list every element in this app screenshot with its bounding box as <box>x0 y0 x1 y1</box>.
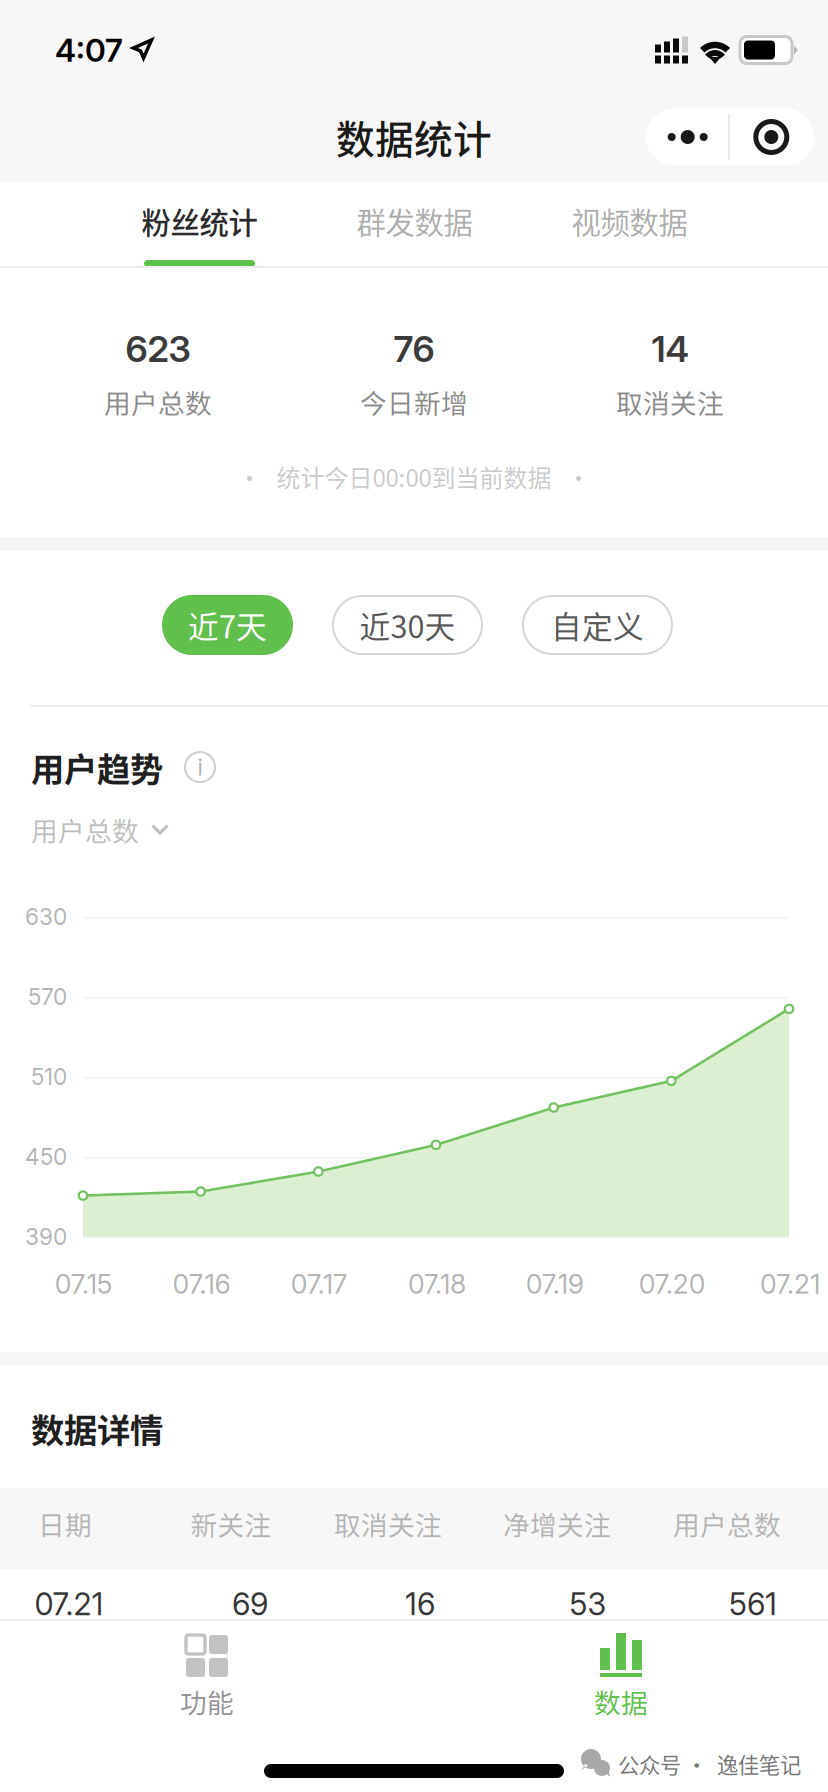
staticText: 数据 <box>594 1682 648 1721</box>
button[interactable]: 近7天 <box>163 596 292 654</box>
staticText: 近30天 <box>359 603 455 647</box>
staticText: 取消关注 <box>334 1504 442 1543</box>
staticText: 510 <box>31 1063 67 1091</box>
button[interactable]: 更多 <box>646 108 814 165</box>
staticText: 功能 <box>180 1682 234 1721</box>
staticText: · 统计今日00:00到当前数据 · <box>237 459 590 494</box>
staticText: 自定义 <box>551 603 644 647</box>
staticText: 14 <box>651 327 688 371</box>
button[interactable]: 功能 <box>0 1621 414 1736</box>
staticText: 07.21 <box>34 1585 103 1622</box>
staticText: 07.20 <box>639 1268 706 1300</box>
staticText: 取消关注 <box>616 383 724 421</box>
staticText: 新关注 <box>190 1504 271 1543</box>
staticText: 570 <box>28 983 67 1011</box>
button[interactable]: 数据 <box>414 1621 828 1736</box>
staticText: 450 <box>25 1143 67 1171</box>
button[interactable]: 粉丝统计 <box>92 182 307 266</box>
staticText: 07.15 <box>55 1268 113 1300</box>
button[interactable]: 自定义 <box>523 596 672 654</box>
staticText: 16 <box>405 1585 435 1622</box>
staticText: 4:07 <box>55 31 123 69</box>
staticText: 净增关注 <box>503 1504 611 1543</box>
staticText: 日期 <box>38 1504 92 1543</box>
staticText: 公众号 · 逸佳笔记 <box>618 1749 801 1779</box>
staticText: 近7天 <box>188 603 267 647</box>
staticText: 用户总数 <box>673 1504 781 1543</box>
staticText: 630 <box>25 903 67 931</box>
staticText: 07.16 <box>172 1268 230 1300</box>
staticText: 群发数据 <box>356 200 472 242</box>
staticText: 数据统计 <box>336 109 492 165</box>
staticText: 07.17 <box>291 1268 348 1300</box>
button[interactable]: 近30天 <box>333 596 482 654</box>
staticText: 数据详情 <box>31 1404 163 1452</box>
staticText: 用户总数 <box>31 810 139 849</box>
staticText: 07.19 <box>526 1268 584 1300</box>
button[interactable]: 群发数据 <box>307 182 522 266</box>
staticText: 07.21 <box>760 1268 820 1300</box>
staticText: i <box>197 753 202 781</box>
staticText: 用户趋势 <box>31 743 163 791</box>
staticText: 今日新增 <box>360 383 468 421</box>
staticText: 561 <box>729 1585 777 1622</box>
button[interactable]: 视频数据 <box>522 182 737 266</box>
staticText: 76 <box>393 327 434 371</box>
staticText: 390 <box>25 1223 67 1251</box>
staticText: 视频数据 <box>571 200 687 242</box>
staticText: 623 <box>125 327 190 371</box>
staticText: 07.18 <box>408 1268 466 1300</box>
staticText: 69 <box>232 1585 268 1622</box>
staticText: 粉丝统计 <box>141 200 257 242</box>
staticText: 53 <box>569 1585 606 1622</box>
staticText: 用户总数 <box>104 383 212 421</box>
